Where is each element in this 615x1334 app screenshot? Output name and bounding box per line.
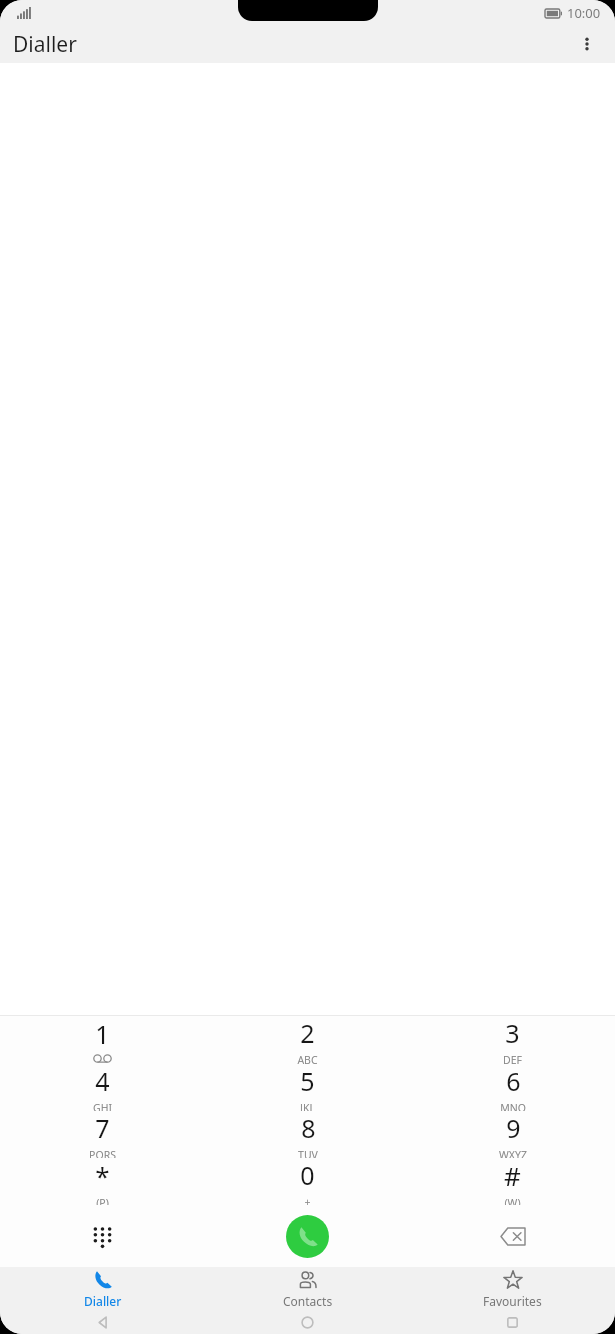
button[interactable]: * (0, 1158, 205, 1205)
button[interactable]: Favourites (410, 1267, 615, 1311)
button[interactable]: 2 (205, 1016, 410, 1064)
staticText: ABC (297, 1053, 318, 1064)
button[interactable]: More options (567, 25, 607, 63)
staticText: Dialler (84, 1293, 122, 1309)
staticText: MNO (500, 1101, 526, 1111)
staticText: Contacts (283, 1293, 333, 1309)
staticText: PQRS (89, 1148, 116, 1158)
staticText: Favourites (483, 1293, 542, 1309)
button[interactable]: 4 (0, 1064, 205, 1111)
staticText: DEF (503, 1053, 522, 1064)
button[interactable]: 8 (205, 1111, 410, 1158)
button[interactable]: Call (286, 1215, 329, 1258)
button[interactable]: 5 (205, 1064, 410, 1111)
button[interactable]: Home (205, 1311, 410, 1334)
staticText: (W) (504, 1196, 521, 1205)
button[interactable]: Back (0, 1311, 205, 1334)
staticText: 7 (95, 1111, 110, 1145)
staticText: 5 (300, 1064, 315, 1098)
staticText: 3 (505, 1016, 520, 1050)
button[interactable]: Recents (410, 1311, 615, 1334)
staticText: * (95, 1158, 110, 1193)
staticText: 2 (300, 1016, 315, 1050)
button[interactable]: Dialpad (0, 1205, 205, 1267)
staticText: 4 (95, 1064, 110, 1098)
button[interactable]: Dialler (0, 1267, 205, 1311)
button[interactable]: 0 (205, 1158, 410, 1205)
staticText: 10:00 (567, 4, 601, 22)
button[interactable]: 3 (410, 1016, 615, 1064)
button[interactable]: 9 (410, 1111, 615, 1158)
button[interactable]: 6 (410, 1064, 615, 1111)
staticText: 8 (301, 1111, 316, 1145)
staticText: + (304, 1195, 311, 1205)
staticText: 6 (506, 1064, 521, 1098)
button[interactable]: Backspace (410, 1205, 615, 1267)
button[interactable]: Contacts (205, 1267, 410, 1311)
staticText: (P) (96, 1196, 109, 1205)
staticText: 9 (506, 1111, 521, 1145)
button[interactable]: 7 (0, 1111, 205, 1158)
staticText: WXYZ (499, 1148, 527, 1158)
button[interactable]: # (410, 1158, 615, 1205)
staticText: JKL (300, 1101, 315, 1111)
staticText: 0 (300, 1158, 315, 1192)
staticText: TUV (298, 1148, 318, 1158)
button[interactable]: 1 (0, 1016, 205, 1064)
staticText: 1 (95, 1017, 110, 1051)
staticText: # (504, 1158, 521, 1193)
staticText: GHI (93, 1101, 112, 1111)
staticText: Dialler (13, 30, 77, 59)
